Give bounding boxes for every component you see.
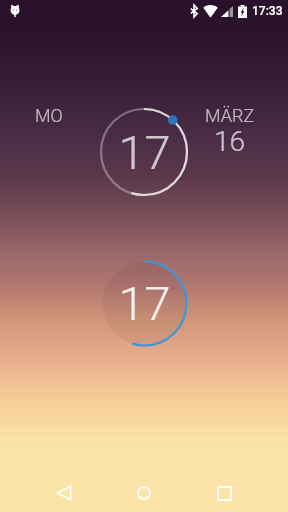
button[interactable]: Back xyxy=(39,474,88,512)
button[interactable]: Home xyxy=(119,474,168,512)
button[interactable]: Recent apps xyxy=(200,474,249,512)
staticText: MO xyxy=(35,105,63,126)
staticText: MÄRZ xyxy=(205,105,255,126)
staticText: 17 xyxy=(118,125,171,180)
staticText: 16 xyxy=(214,125,246,158)
staticText: 17:33 xyxy=(252,4,283,18)
button[interactable]: Selected day 17 xyxy=(99,258,190,349)
staticText: 17 xyxy=(118,276,171,331)
button[interactable]: Day 17 xyxy=(96,104,192,200)
